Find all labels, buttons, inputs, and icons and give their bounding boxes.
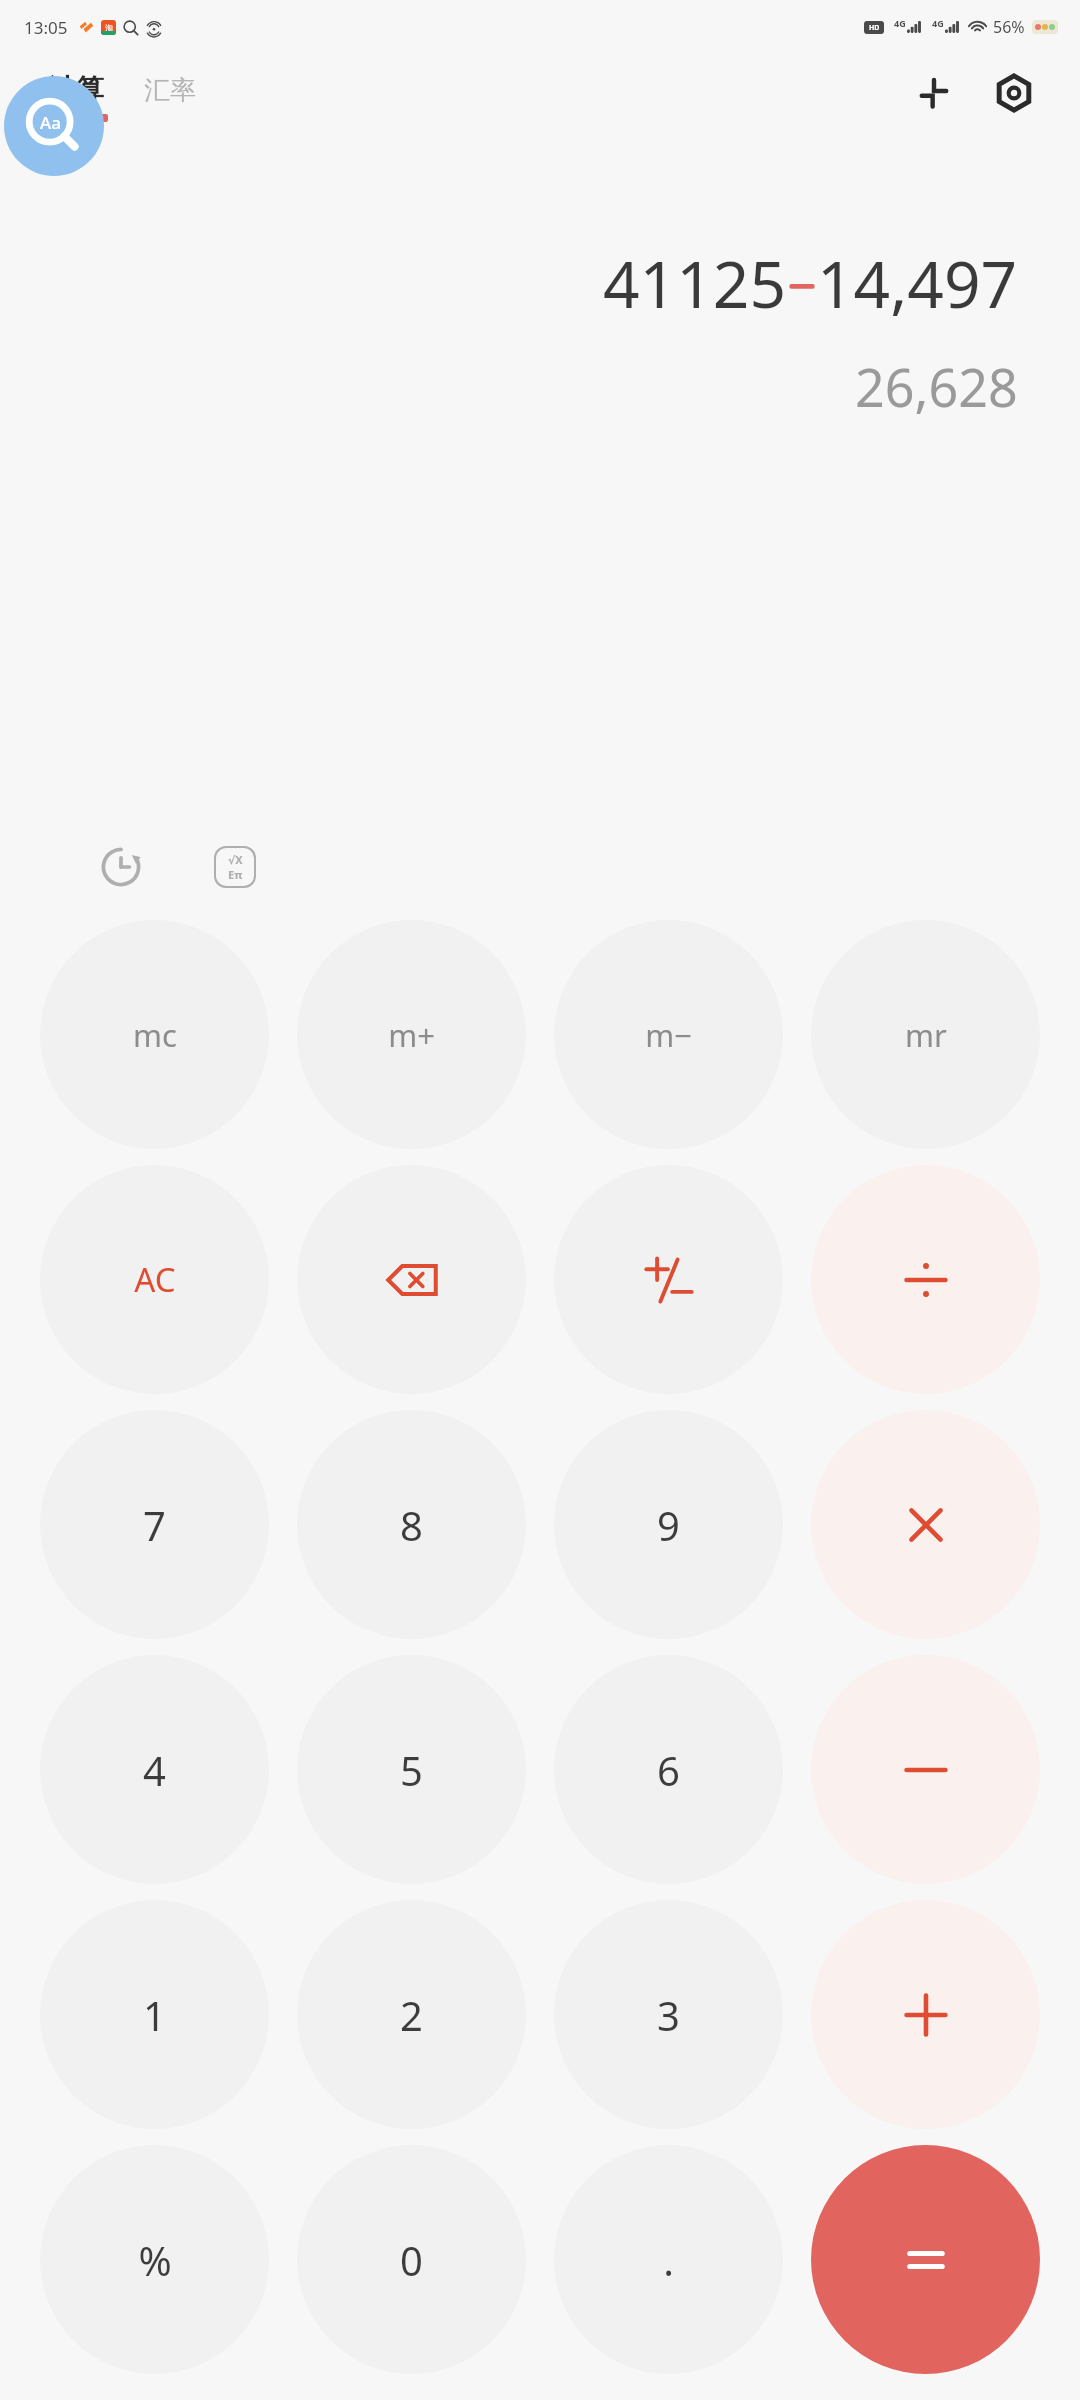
button[interactable]: Scientific: [202, 834, 268, 900]
staticText: 淘: [105, 23, 113, 33]
button[interactable]: 计算: [44, 72, 108, 122]
staticText: 3: [657, 1988, 680, 2042]
button[interactable]: mc: [40, 920, 269, 1149]
staticText: mr: [905, 1014, 947, 1056]
button[interactable]: .: [554, 2145, 783, 2374]
button[interactable]: Settings: [986, 65, 1042, 121]
staticText: 2: [400, 1988, 423, 2042]
button[interactable]: m−: [554, 920, 783, 1149]
button[interactable]: 汇率: [144, 74, 196, 122]
button[interactable]: Multiply: [811, 1410, 1040, 1639]
button[interactable]: Divide: [811, 1165, 1040, 1394]
button[interactable]: %: [40, 2145, 269, 2374]
button[interactable]: History: [88, 834, 154, 900]
staticText: 1: [143, 1988, 166, 2042]
button[interactable]: Backspace: [297, 1165, 526, 1394]
staticText: 6: [657, 1743, 680, 1797]
staticText: 13:05: [24, 16, 68, 39]
staticText: 56%: [993, 16, 1025, 38]
button[interactable]: AC: [40, 1165, 269, 1394]
button[interactable]: 9: [554, 1410, 783, 1639]
staticText: 4G: [894, 17, 906, 29]
staticText: 5: [400, 1743, 423, 1797]
button[interactable]: Text translate: [4, 76, 104, 176]
button[interactable]: Plus minus: [554, 1165, 783, 1394]
button[interactable]: 0: [297, 2145, 526, 2374]
staticText: 41125: [603, 240, 787, 327]
button[interactable]: Minus: [811, 1655, 1040, 1884]
staticText: 4: [143, 1743, 166, 1797]
staticText: 4G: [932, 17, 944, 29]
button[interactable]: 6: [554, 1655, 783, 1884]
button[interactable]: 4: [40, 1655, 269, 1884]
button[interactable]: Equals: [811, 2145, 1040, 2374]
staticText: 7: [143, 1498, 166, 1552]
staticText: Eπ: [228, 867, 243, 882]
button[interactable]: 5: [297, 1655, 526, 1884]
button[interactable]: 2: [297, 1900, 526, 2129]
button[interactable]: 7: [40, 1410, 269, 1639]
button[interactable]: m+: [297, 920, 526, 1149]
staticText: HD: [869, 23, 880, 33]
staticText: m−: [645, 1014, 692, 1056]
staticText: 9: [657, 1498, 680, 1552]
staticText: AC: [134, 1257, 176, 1302]
button[interactable]: 8: [297, 1410, 526, 1639]
staticText: Aa: [40, 111, 61, 134]
button[interactable]: Plus: [811, 1900, 1040, 2129]
staticText: 汇率: [144, 74, 196, 107]
staticText: √X: [228, 852, 243, 867]
button[interactable]: Convert units: [906, 65, 962, 121]
button[interactable]: mr: [811, 920, 1040, 1149]
staticText: 0: [400, 2233, 423, 2287]
button[interactable]: 3: [554, 1900, 783, 2129]
staticText: 8: [400, 1498, 423, 1552]
staticText: 计算: [48, 72, 104, 107]
staticText: m+: [388, 1014, 435, 1056]
staticText: 14,497: [817, 240, 1018, 327]
staticText: .: [663, 2233, 674, 2287]
button[interactable]: 1: [40, 1900, 269, 2129]
staticText: 26,628: [855, 351, 1018, 422]
staticText: mc: [133, 1014, 177, 1056]
staticText: %: [138, 2233, 172, 2287]
